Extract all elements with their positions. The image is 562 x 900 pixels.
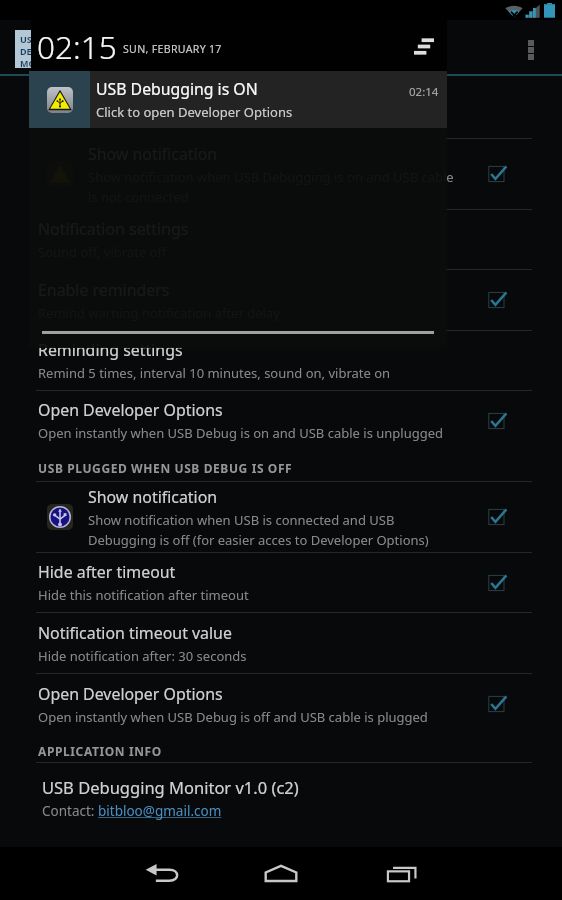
staticText: APPLICATION INFO [38, 743, 162, 759]
staticText: SUN, FEBRUARY 17 [123, 42, 222, 56]
staticText: Remind 5 times, interval 10 minutes, sou… [38, 364, 391, 382]
button[interactable]: App icon [15, 30, 53, 68]
staticText: Open instantly when USB Debug is on and … [38, 424, 444, 442]
staticText: Show notification when USB Debugging is … [88, 168, 454, 186]
staticText: USB PLUGGED WHEN USB DEBUG IS OFF [38, 460, 293, 476]
staticText: Enable reminders [38, 279, 170, 301]
button[interactable]: USB Debugging is ON [29, 71, 447, 128]
staticText: USB Debugging Monitor v1.0 (c2) [42, 776, 299, 798]
button[interactable]: Reminding settings [0, 331, 562, 390]
button[interactable]: Enable reminders [0, 270, 562, 330]
staticText: Open instantly when USB Debug is off and… [38, 708, 428, 726]
button[interactable]: USB Debugging Monitor v1.0 (c2) [0, 763, 562, 823]
staticText: Reminding settings [38, 339, 183, 361]
staticText: Show notification [88, 486, 218, 508]
button[interactable]: Notification timeout value [0, 613, 562, 673]
staticText: 02:15 [37, 25, 117, 68]
staticText: Hide after timeout [38, 561, 176, 583]
staticText: Show notification when USB is connected … [88, 511, 395, 529]
staticText: Notification timeout value [38, 622, 232, 644]
staticText: MON [20, 57, 43, 69]
button[interactable]: Show notification [0, 482, 562, 552]
button[interactable]: Open Developer Options [0, 674, 562, 734]
button[interactable]: Recent apps [362, 847, 442, 900]
staticText: Open Developer Options [38, 683, 223, 705]
staticText: 02:14 [409, 84, 439, 100]
staticText: Hide notification after: 30 seconds [38, 647, 247, 665]
staticText: Click to open Developer Options [96, 103, 293, 121]
button[interactable]: More options [515, 28, 547, 72]
button[interactable]: Home [241, 847, 321, 900]
staticText: USB [20, 33, 38, 45]
staticText: Show notification [88, 143, 218, 165]
staticText: Debugging is off (for easier acces to De… [88, 531, 429, 549]
staticText: USB Debugging is ON [96, 78, 258, 100]
staticText: Open Developer Options [38, 399, 223, 421]
button[interactable]: Open Developer Options [0, 391, 562, 450]
button[interactable]: Clear all notifications [405, 27, 443, 65]
staticText: bitbloo@gmail.com [98, 802, 222, 820]
staticText: DEB [20, 45, 38, 57]
staticText: Contact: [42, 802, 98, 820]
staticText: Hide this notification after timeout [38, 586, 249, 604]
staticText: Notification settings [38, 218, 189, 240]
button[interactable]: Hide after timeout [0, 553, 562, 612]
button[interactable]: Show notification [0, 139, 562, 209]
button[interactable]: Back [122, 847, 202, 900]
